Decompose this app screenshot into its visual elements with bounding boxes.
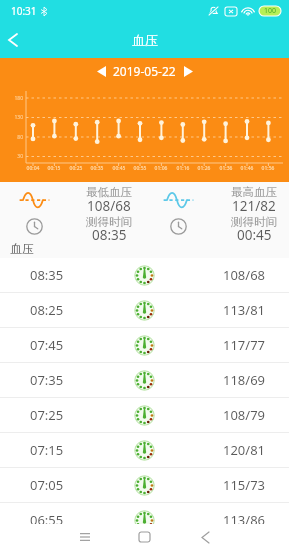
button[interactable]: Recents: [73, 525, 97, 549]
staticText: 108/68: [87, 197, 131, 215]
staticText: 测得时间: [86, 215, 132, 229]
staticText: 01:16: [172, 165, 194, 172]
staticText: 血压: [10, 241, 34, 256]
button[interactable]: 07:45: [0, 328, 289, 362]
button[interactable]: 06:55: [0, 503, 289, 537]
staticText: 00:45: [108, 165, 130, 172]
button[interactable]: 07:35: [0, 363, 289, 397]
staticText: 180: [4, 95, 23, 102]
button[interactable]: Home: [132, 525, 156, 549]
staticText: 113/81: [155, 301, 265, 319]
staticText: 00:25: [65, 165, 87, 172]
staticText: 10:31: [11, 4, 37, 18]
staticText: 07:05: [30, 476, 134, 494]
staticText: 07:35: [30, 371, 134, 389]
button[interactable]: 07:05: [0, 468, 289, 502]
staticText: 最高血压: [231, 185, 277, 199]
button[interactable]: Next day: [181, 64, 195, 78]
staticText: 00:15: [43, 165, 65, 172]
staticText: 最低血压: [86, 185, 132, 199]
button[interactable]: Previous day: [94, 64, 108, 78]
staticText: 115/73: [155, 476, 265, 494]
staticText: 80: [4, 134, 23, 141]
staticText: 117/77: [155, 336, 265, 354]
button[interactable]: Back: [193, 525, 217, 549]
staticText: 07:15: [30, 441, 134, 459]
staticText: 00:04: [22, 165, 44, 172]
staticText: 130: [4, 114, 23, 121]
staticText: 00:35: [86, 165, 108, 172]
staticText: 01:06: [150, 165, 172, 172]
staticText: 测得时间: [231, 215, 277, 229]
staticText: 2019-05-22: [113, 63, 176, 79]
button[interactable]: 08:25: [0, 293, 289, 327]
staticText: 01:36: [215, 165, 237, 172]
staticText: 120/81: [155, 441, 265, 459]
button[interactable]: 08:35: [0, 258, 289, 292]
staticText: 01:46: [236, 165, 258, 172]
staticText: 113/86: [155, 511, 265, 529]
staticText: 06:55: [30, 511, 134, 529]
staticText: 00:45: [237, 226, 272, 244]
staticText: 00:55: [129, 165, 151, 172]
button[interactable]: 07:25: [0, 398, 289, 432]
button[interactable]: Back: [0, 27, 26, 53]
staticText: 108/68: [155, 266, 265, 284]
staticText: 100: [264, 6, 277, 16]
staticText: 07:45: [30, 336, 134, 354]
staticText: 08:25: [30, 301, 134, 319]
staticText: 01:56: [257, 165, 279, 172]
button[interactable]: 07:15: [0, 433, 289, 467]
staticText: 血压: [132, 32, 158, 48]
staticText: 08:35: [30, 266, 134, 284]
staticText: 01:26: [193, 165, 215, 172]
staticText: 07:25: [30, 406, 134, 424]
staticText: 108/79: [155, 406, 265, 424]
staticText: 08:35: [92, 226, 127, 244]
staticText: 118/69: [155, 371, 265, 389]
staticText: 121/82: [232, 197, 276, 215]
staticText: 30: [4, 153, 23, 160]
